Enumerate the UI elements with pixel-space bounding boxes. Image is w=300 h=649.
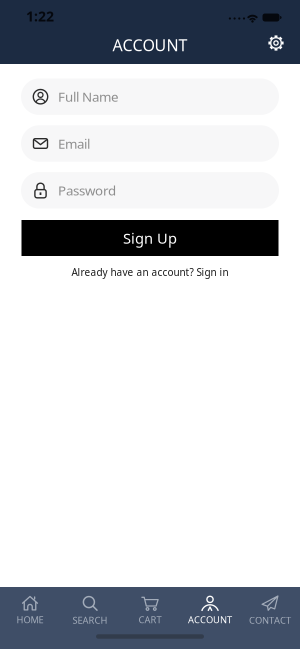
staticText: CART: [138, 613, 161, 626]
staticText: Full Name: [58, 88, 119, 106]
staticText: Already have an account? Sign in: [71, 265, 228, 279]
staticText: Password: [58, 181, 116, 199]
button[interactable]: Sign Up: [21, 220, 278, 256]
staticText: 1:22: [26, 6, 54, 26]
staticText: CONTACT: [249, 614, 291, 626]
button[interactable]: Email: [21, 125, 279, 162]
button[interactable]: CART: [120, 588, 180, 634]
button[interactable]: Settings: [262, 29, 290, 57]
staticText: HOME: [16, 613, 43, 626]
button[interactable]: ACCOUNT: [180, 588, 240, 634]
staticText: Email: [58, 134, 90, 153]
staticText: Sign Up: [123, 228, 177, 248]
button[interactable]: Password: [21, 172, 279, 209]
button[interactable]: Full Name: [21, 78, 279, 115]
button[interactable]: HOME: [0, 588, 60, 634]
button[interactable]: Already have an account? Sign in: [71, 265, 228, 279]
staticText: SEARCH: [72, 614, 107, 626]
button[interactable]: CONTACT: [240, 588, 300, 634]
staticText: ACCOUNT: [112, 34, 187, 56]
button[interactable]: SEARCH: [60, 588, 120, 634]
staticText: ACCOUNT: [188, 613, 232, 626]
